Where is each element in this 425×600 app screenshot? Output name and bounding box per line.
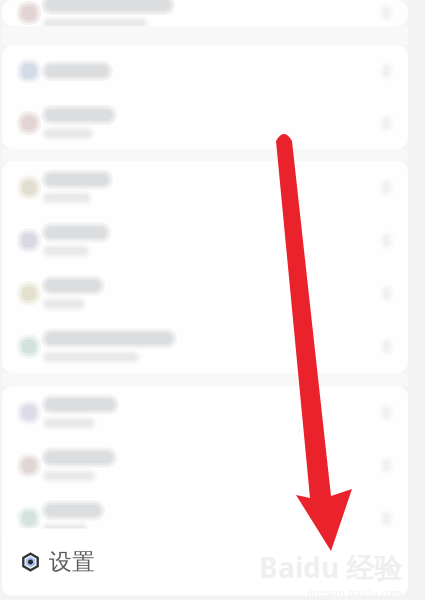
button[interactable] — [2, 161, 408, 214]
button[interactable] — [2, 439, 408, 492]
staticText: jingyan.baidu.com — [307, 586, 402, 600]
button[interactable] — [2, 214, 408, 267]
staticText: 设置 — [49, 548, 95, 576]
button[interactable] — [2, 0, 408, 26]
staticText: Baidu 经验 — [259, 548, 402, 586]
button[interactable] — [2, 320, 408, 373]
button[interactable] — [2, 45, 408, 97]
button[interactable]: 设置 — [2, 528, 408, 595]
button[interactable] — [2, 492, 408, 545]
button[interactable] — [2, 267, 408, 320]
button[interactable] — [2, 386, 408, 439]
button[interactable] — [2, 97, 408, 149]
